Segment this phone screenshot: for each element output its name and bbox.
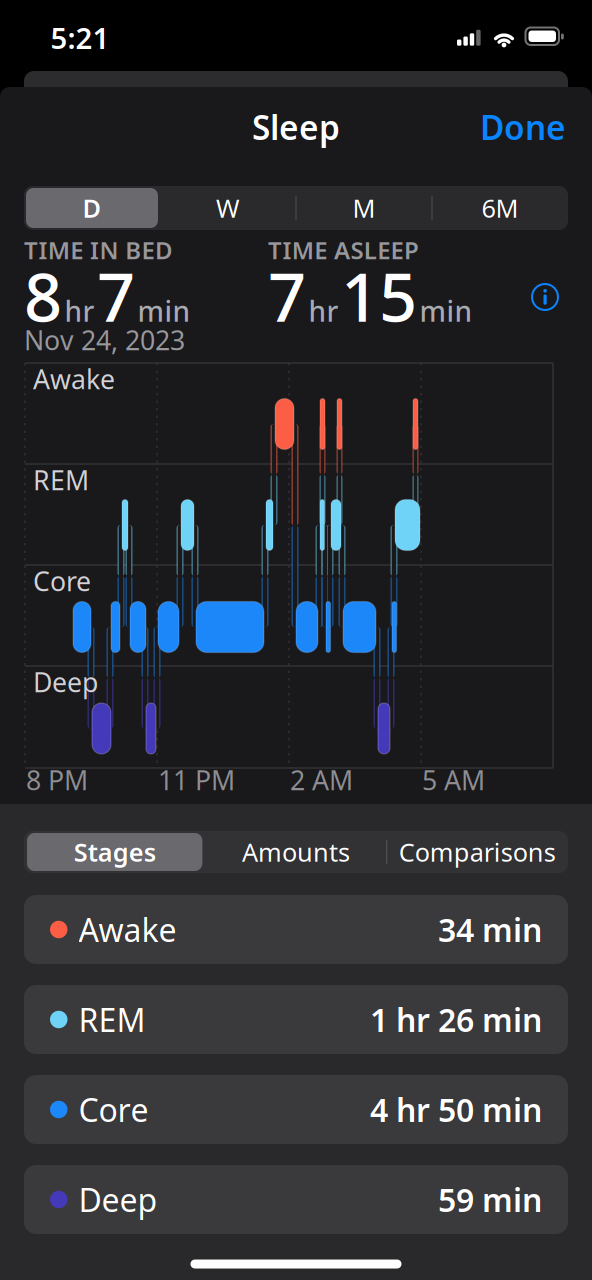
staticText: 1 hr 26 min [370,998,542,1041]
staticText: min [137,292,190,330]
staticText: 5:21 [50,18,109,57]
staticText: W [216,191,240,225]
staticText: 6M [481,191,518,225]
staticText: 34 min [438,908,542,951]
staticText: 8 [24,252,62,340]
staticText: Amounts [242,835,350,869]
staticText: REM [33,462,89,498]
staticText: D [82,191,101,225]
staticText: 2 AM [290,762,353,798]
staticText: Deep [78,1178,157,1221]
staticText: Deep [33,664,98,700]
button[interactable]: Done [456,105,566,149]
button[interactable]: Amounts [205,831,387,873]
button[interactable]: M [296,186,432,230]
staticText: 7 [268,252,306,340]
staticText: hr [64,292,94,330]
staticText: 59 min [438,1178,542,1221]
button[interactable]: D [24,186,160,230]
button[interactable]: 6M [432,186,568,230]
staticText: TIME IN BED [24,234,173,266]
staticText: 15 [341,252,417,340]
button[interactable]: About Sleep [527,279,563,315]
staticText: 8 PM [26,762,88,798]
staticText: 7 [97,252,135,340]
staticText: hr [308,292,338,330]
staticText: Sleep [252,105,340,149]
staticText: REM [78,998,145,1041]
staticText: Awake [33,361,115,397]
staticText: 4 hr 50 min [370,1088,542,1131]
button[interactable]: Stages [24,831,205,873]
staticText: 5 AM [422,762,485,798]
staticText: Stages [74,835,156,869]
staticText: Core [78,1088,148,1131]
button[interactable]: Comparisons [387,831,568,873]
staticText: Done [480,105,566,149]
staticText: Core [33,563,91,599]
staticText: min [419,292,472,330]
staticText: M [352,191,375,225]
staticText: Comparisons [399,835,556,869]
staticText: TIME ASLEEP [268,234,419,266]
staticText: Nov 24, 2023 [24,322,185,358]
button[interactable]: W [160,186,296,230]
staticText: Awake [78,908,176,951]
staticText: 11 PM [158,762,235,798]
